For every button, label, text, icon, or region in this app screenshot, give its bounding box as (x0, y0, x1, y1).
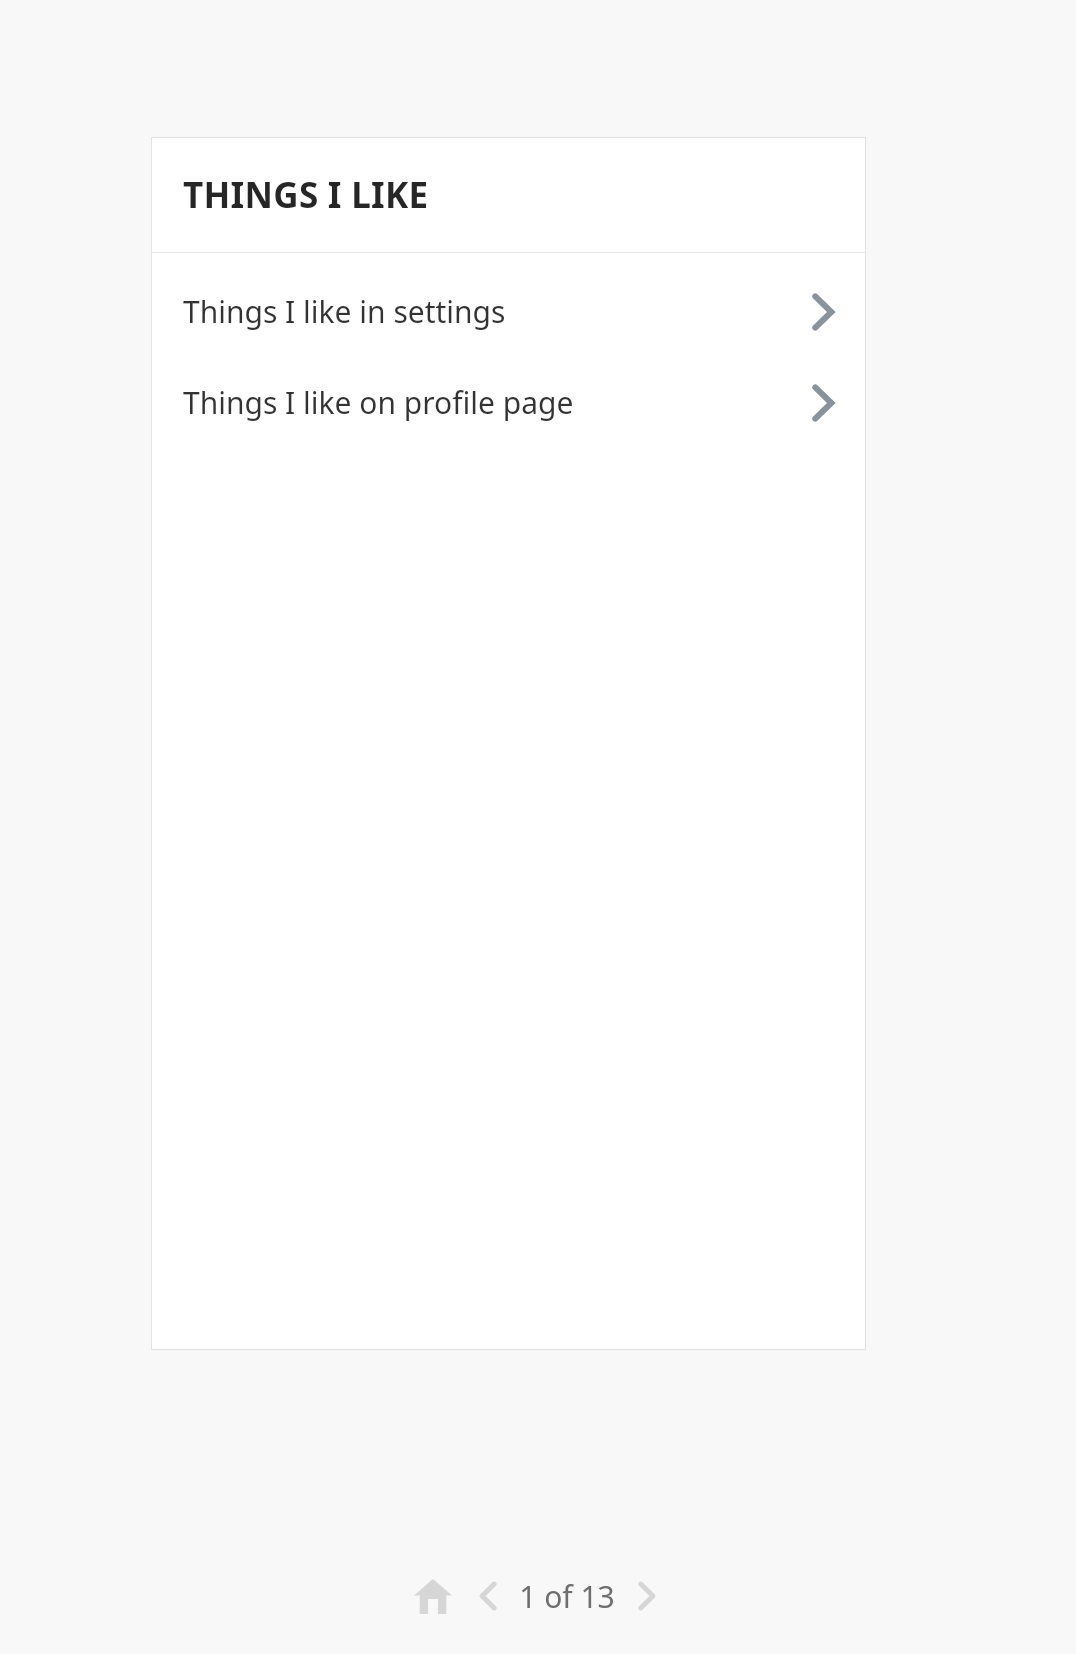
button[interactable]: Previous (462, 1570, 514, 1622)
staticText: Things I like on profile page (183, 382, 574, 423)
staticText: 1 of 13 (519, 1576, 615, 1617)
button[interactable]: Home (404, 1570, 462, 1622)
staticText: THINGS I LIKE (183, 171, 429, 219)
button[interactable]: Things I like in settings (151, 266, 866, 357)
button[interactable]: Things I like on profile page (151, 357, 866, 448)
staticText: Things I like in settings (183, 291, 506, 332)
button[interactable]: Next (620, 1570, 672, 1622)
